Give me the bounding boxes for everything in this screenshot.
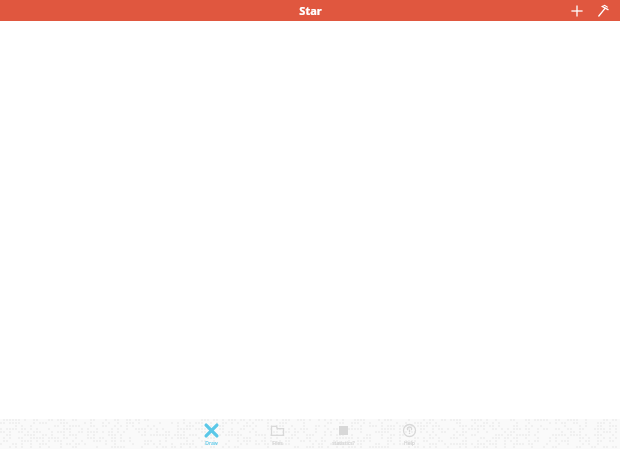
staticText: statistics? [332,440,355,447]
staticText: Star [299,3,322,18]
button[interactable]: Add [564,0,590,21]
button[interactable]: statistics? [310,419,376,449]
button[interactable]: Tools [590,0,616,21]
staticText: Files [272,440,283,447]
button[interactable]: Files [244,419,310,449]
staticText: Help [404,440,415,447]
staticText: Draw [205,440,218,447]
button[interactable]: Help [376,419,442,449]
button[interactable]: Draw [178,419,244,449]
